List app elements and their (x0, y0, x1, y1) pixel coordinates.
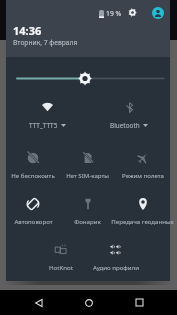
staticText: HotKnot (49, 263, 73, 271)
button[interactable]: Режим полета (115, 139, 170, 185)
button[interactable]: Нет SIM-карты (60, 139, 115, 185)
button[interactable]: Home (76, 290, 101, 315)
staticText: Автоповорот (14, 217, 53, 225)
button[interactable]: Фонарик (60, 185, 115, 231)
button[interactable]: Recents (127, 290, 152, 315)
staticText: Передача геоданных (111, 217, 174, 225)
staticText: Фонарик (74, 217, 101, 225)
staticText: TTT_TTT5 (29, 121, 58, 130)
button[interactable]: TTT_TTT5 (6, 99, 88, 130)
button[interactable]: Bluetooth (88, 99, 170, 130)
button[interactable]: User (152, 7, 164, 19)
staticText: Не беспокоить (11, 171, 55, 179)
button[interactable]: Автоповорот (6, 185, 60, 231)
staticText: Режим полета (122, 171, 164, 179)
button[interactable]: Аудио профили (88, 231, 143, 277)
button[interactable]: Не беспокоить (6, 139, 60, 185)
staticText: Вторник, 7 февраля (13, 38, 78, 47)
staticText: 14:36 (13, 23, 42, 38)
staticText: Нет SIM-карты (66, 171, 109, 179)
staticText: Bluetooth (110, 121, 140, 130)
staticText: 19 % (106, 9, 122, 18)
button[interactable]: Brightness (6, 57, 170, 99)
button[interactable]: HotKnot (33, 231, 88, 277)
button[interactable]: Settings (123, 4, 141, 21)
staticText: Аудио профили (93, 263, 139, 271)
button[interactable]: Back (26, 290, 51, 315)
button[interactable]: Передача геоданных (115, 185, 170, 231)
